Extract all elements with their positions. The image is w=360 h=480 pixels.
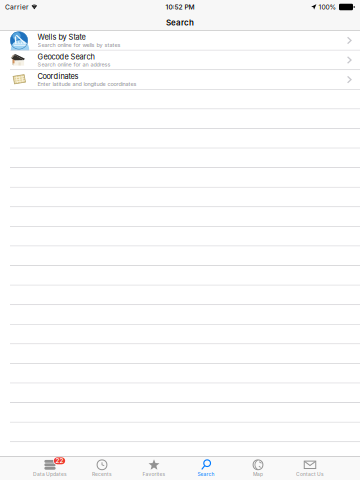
staticText: Carrier xyxy=(5,3,29,11)
staticText: Search xyxy=(197,471,214,477)
button[interactable]: Contact Us xyxy=(284,456,336,479)
staticText: 100% xyxy=(318,3,336,11)
staticText: 10:52 PM xyxy=(165,3,194,11)
staticText: Geocode Search xyxy=(37,52,94,61)
button[interactable]: Geocode Search xyxy=(0,51,360,70)
staticText: Wells by State xyxy=(37,33,85,42)
button[interactable]: Favorites xyxy=(128,456,180,479)
staticText: Search xyxy=(166,18,194,27)
staticText: Recents xyxy=(92,471,112,477)
button[interactable]: Wells by State xyxy=(0,31,360,51)
staticText: Data Updates xyxy=(33,471,67,477)
staticText: Enter latitude and longitude coordinates xyxy=(37,81,136,87)
staticText: Contact Us xyxy=(296,471,324,477)
button[interactable]: Map xyxy=(232,456,284,479)
button[interactable]: Search xyxy=(180,456,232,479)
staticText: 22 xyxy=(55,457,63,464)
staticText: Favorites xyxy=(142,471,165,477)
staticText: Map xyxy=(253,471,263,477)
button[interactable]: Coordinates xyxy=(0,70,360,90)
staticText: Search online for wells by states xyxy=(37,42,120,48)
staticText: Search online for an address xyxy=(37,61,110,68)
button[interactable]: Recents xyxy=(76,456,128,479)
staticText: Coordinates xyxy=(37,72,78,81)
button[interactable]: 22 xyxy=(24,456,76,479)
